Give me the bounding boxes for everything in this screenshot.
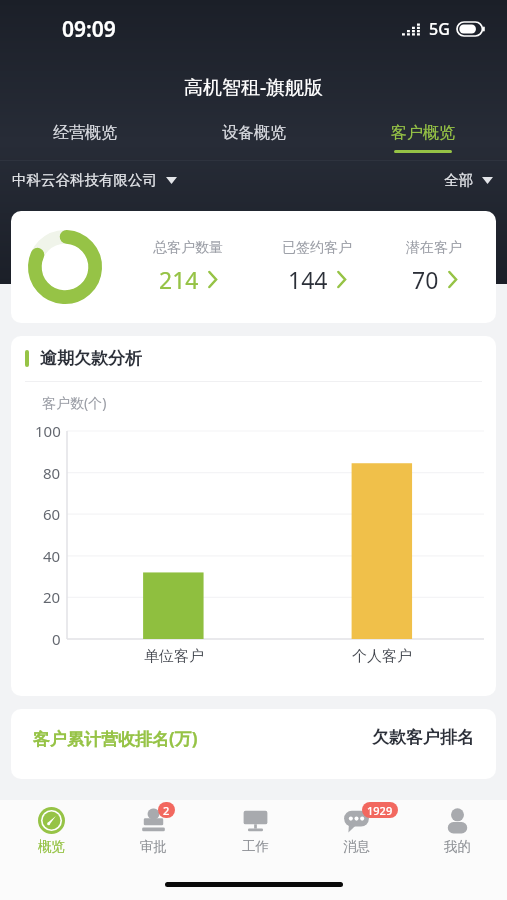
staticText: 设备概览 xyxy=(222,123,286,143)
staticText: 工作 xyxy=(242,838,269,855)
staticText: 总客户数量 xyxy=(153,239,223,257)
button[interactable]: 工作 xyxy=(204,800,305,860)
button[interactable]: 审批 xyxy=(102,800,204,860)
button[interactable]: 概览 xyxy=(0,800,102,860)
staticText: 144 xyxy=(288,264,328,295)
staticText: 5G xyxy=(429,18,450,40)
staticText: 审批 xyxy=(140,838,167,855)
staticText: 我的 xyxy=(444,838,471,855)
staticText: 欠款客户排名 xyxy=(372,727,474,748)
button[interactable]: 消息 xyxy=(305,800,406,860)
staticText: 40 xyxy=(43,546,61,566)
button[interactable]: 设备概览 xyxy=(169,115,338,160)
staticText: 2 xyxy=(163,803,170,818)
button[interactable]: 全部 xyxy=(444,171,493,189)
staticText: 70 xyxy=(412,264,439,295)
staticText: 逾期欠款分析 xyxy=(40,348,142,369)
button[interactable]: 我的 xyxy=(406,800,507,860)
staticText: 60 xyxy=(43,504,61,524)
staticText: 214 xyxy=(159,264,199,295)
staticText: 100 xyxy=(35,421,61,441)
staticText: 20 xyxy=(43,587,61,607)
staticText: 已签约客户 xyxy=(282,239,352,257)
staticText: 个人客户 xyxy=(330,647,434,666)
staticText: 中科云谷科技有限公司 xyxy=(12,171,157,189)
staticText: 高机智租-旗舰版 xyxy=(184,74,324,100)
button[interactable]: 客户概览 xyxy=(338,115,507,160)
staticText: 0 xyxy=(52,629,61,649)
staticText: 1929 xyxy=(367,803,393,818)
staticText: 客户数(个) xyxy=(42,393,107,412)
staticText: 消息 xyxy=(343,838,370,855)
staticText: 单位客户 xyxy=(122,647,226,666)
staticText: 潜在客户 xyxy=(406,239,462,257)
staticText: 09:09 xyxy=(62,15,116,44)
button[interactable]: 经营概览 xyxy=(0,115,169,160)
button[interactable]: 总客户数量 xyxy=(120,239,256,295)
button[interactable]: 潜在客户 xyxy=(378,239,490,295)
button[interactable]: 中科云谷科技有限公司 xyxy=(12,171,177,189)
staticText: 经营概览 xyxy=(53,123,117,143)
staticText: 客户概览 xyxy=(391,123,455,143)
staticText: 全部 xyxy=(444,171,473,189)
staticText: 概览 xyxy=(38,838,65,855)
staticText: 客户累计营收排名(万) xyxy=(33,727,198,750)
staticText: 80 xyxy=(43,463,61,483)
button[interactable]: 已签约客户 xyxy=(256,239,378,295)
